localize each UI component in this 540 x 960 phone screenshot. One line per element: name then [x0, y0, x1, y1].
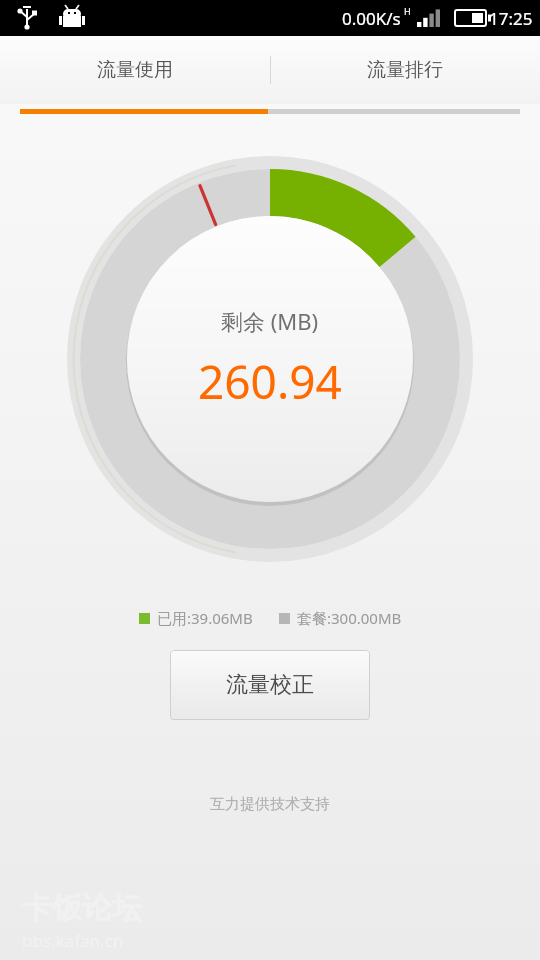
staticText: 17:25: [489, 7, 533, 30]
staticText: 流量使用: [97, 58, 173, 82]
staticText: 套餐:300.00MB: [297, 608, 402, 628]
staticText: 流量校正: [226, 671, 314, 699]
button[interactable]: 流量校正: [170, 650, 370, 720]
staticText: 流量排行: [367, 58, 443, 82]
staticText: H: [404, 5, 411, 17]
staticText: 剩余 (MB): [221, 306, 319, 336]
button[interactable]: 流量使用: [0, 36, 270, 104]
staticText: 互力提供技术支持: [0, 795, 540, 814]
staticText: 260.94: [198, 350, 342, 413]
button[interactable]: 流量排行: [270, 36, 540, 104]
staticText: 0.00K/s: [342, 7, 401, 30]
staticText: 已用:39.06MB: [157, 608, 253, 628]
